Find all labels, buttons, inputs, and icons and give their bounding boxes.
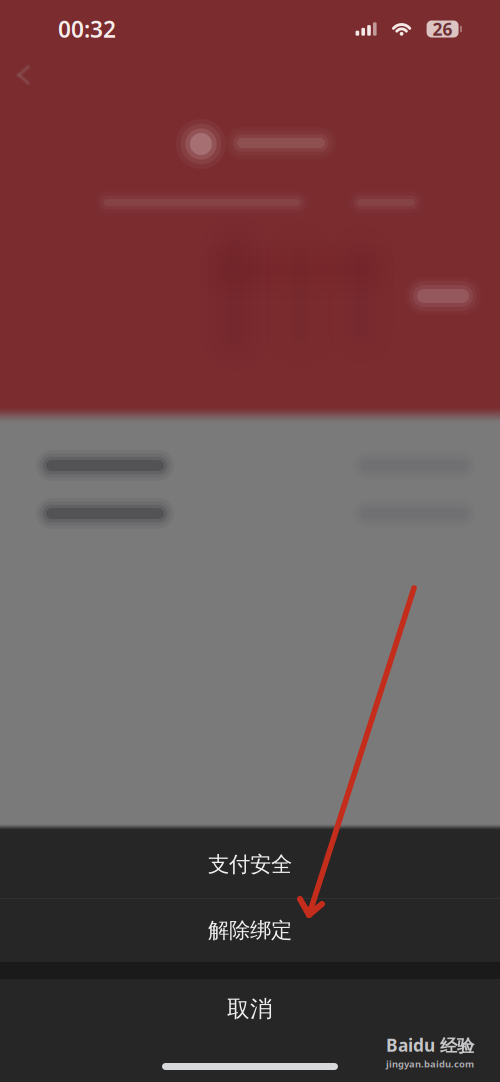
staticText: jingyan.baidu.com	[386, 1058, 474, 1070]
staticText: 支付安全	[208, 851, 292, 878]
button[interactable]: 解除绑定	[0, 899, 500, 962]
button[interactable]: 取消	[0, 979, 500, 1039]
staticText: 取消	[227, 995, 273, 1023]
staticText: 解除绑定	[208, 917, 292, 944]
staticText: 26	[433, 17, 453, 40]
button[interactable]: 支付安全	[0, 831, 500, 898]
staticText: Baidu 经验	[386, 1033, 474, 1057]
staticText: 00:32	[58, 14, 116, 44]
